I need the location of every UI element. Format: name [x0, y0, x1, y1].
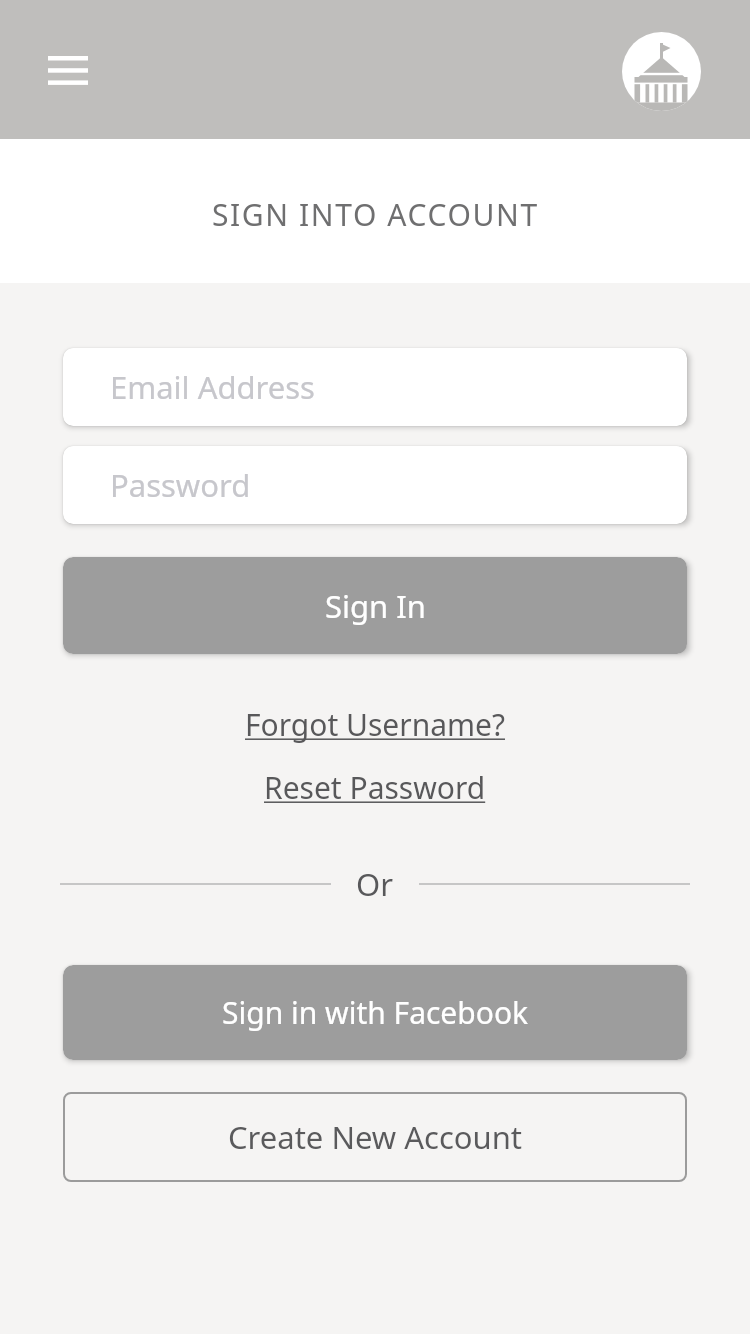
button[interactable] [622, 32, 701, 111]
staticText: Or [356, 863, 394, 905]
staticText: Reset Password [264, 767, 486, 808]
button[interactable]: Sign In [63, 557, 687, 654]
button[interactable]: Forgot Username? [245, 704, 506, 745]
staticText: Create New Account [228, 1116, 523, 1158]
button[interactable]: Reset Password [264, 767, 486, 808]
staticText: SIGN INTO ACCOUNT [212, 194, 539, 235]
staticText: Forgot Username? [245, 704, 506, 745]
button[interactable]: Password [63, 446, 687, 524]
button[interactable]: Sign in with Facebook [63, 965, 687, 1060]
button[interactable]: Create New Account [63, 1092, 687, 1182]
staticText: Password [110, 464, 251, 506]
button[interactable]: Email Address [63, 348, 687, 426]
staticText: Sign in with Facebook [222, 992, 529, 1033]
staticText: Sign In [325, 585, 426, 627]
button[interactable] [40, 46, 96, 94]
staticText: Email Address [110, 366, 315, 408]
